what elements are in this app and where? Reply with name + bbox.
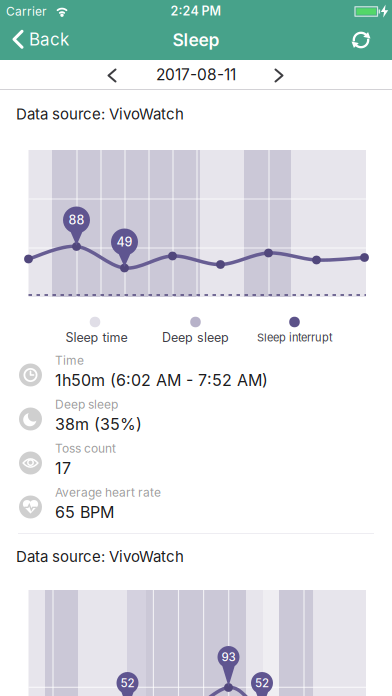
staticText: Sleep interrupt <box>257 331 333 344</box>
staticText: Carrier <box>6 4 47 18</box>
staticText: Time <box>55 353 84 367</box>
button[interactable] <box>351 30 371 50</box>
button[interactable] <box>274 68 284 83</box>
staticText: 1h50m (6:02 AM - 7:52 AM) <box>55 370 268 390</box>
staticText: 88 <box>68 212 84 227</box>
staticText: Average heart rate <box>55 485 161 499</box>
button[interactable]: Back <box>12 29 69 50</box>
staticText: 17 <box>55 458 71 478</box>
staticText: Toss count <box>55 441 116 455</box>
staticText: 65 BPM <box>55 502 114 522</box>
staticText: Data source: VivoWatch <box>16 105 184 123</box>
staticText: Deep sleep <box>162 330 229 345</box>
staticText: 2:24 PM <box>170 3 221 18</box>
staticText: 93 <box>221 650 235 664</box>
staticText: Data source: VivoWatch <box>16 547 184 566</box>
staticText: 52 <box>120 676 134 690</box>
staticText: Deep sleep <box>55 397 118 411</box>
staticText: Sleep time <box>65 330 127 345</box>
button[interactable] <box>107 68 117 83</box>
staticText: 38m (35%) <box>55 414 142 434</box>
staticText: 49 <box>116 234 132 249</box>
staticText: Sleep <box>172 29 219 51</box>
staticText: 52 <box>255 676 269 690</box>
staticText: Back <box>29 29 69 50</box>
staticText: 2017-08-11 <box>156 65 236 84</box>
